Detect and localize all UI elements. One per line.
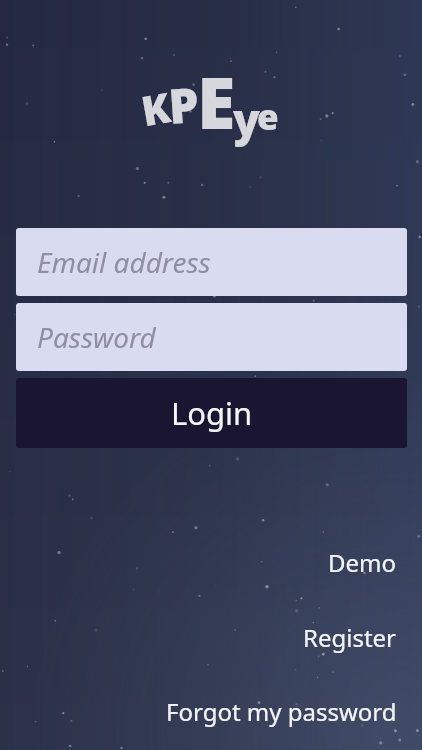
staticText: e xyxy=(257,93,279,141)
button[interactable]: Email address xyxy=(16,228,407,296)
button[interactable]: Demo xyxy=(328,546,397,579)
staticText: K xyxy=(137,78,175,138)
staticText: Forgot my password xyxy=(166,695,397,728)
staticText: P xyxy=(166,71,202,138)
button[interactable]: Register xyxy=(303,621,397,654)
staticText: Login xyxy=(171,392,253,434)
staticText: Password xyxy=(37,318,156,356)
staticText: Register xyxy=(303,621,397,654)
staticText: E xyxy=(197,54,236,149)
button[interactable]: Forgot my password xyxy=(166,695,397,728)
staticText: y xyxy=(233,89,260,149)
staticText: Email address xyxy=(37,243,211,281)
button[interactable]: Password xyxy=(16,303,407,371)
staticText: Demo xyxy=(328,546,397,579)
button[interactable]: Login xyxy=(16,378,407,448)
